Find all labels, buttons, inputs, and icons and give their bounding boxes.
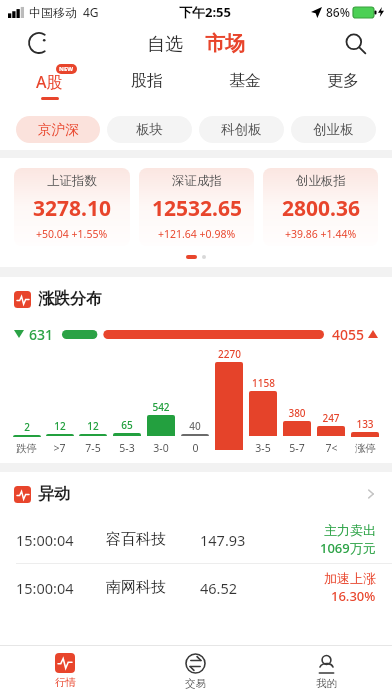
staticText: 15:00:04 [16, 578, 74, 598]
button[interactable]: 上证指数 [14, 168, 130, 246]
staticText: 3278.10 [33, 194, 111, 223]
staticText: 深证成指 [172, 173, 222, 189]
staticText: 市场 [205, 31, 245, 56]
staticText: 542 [152, 400, 170, 414]
button[interactable]: 更多 [294, 62, 392, 108]
staticText: 7< [325, 441, 338, 455]
staticText: 247 [322, 411, 340, 425]
staticText: 跌停 [16, 442, 37, 455]
staticText: 2 [24, 420, 30, 434]
staticText: A股 [36, 71, 63, 93]
staticText: 380 [288, 406, 306, 420]
staticText: 更多 [327, 71, 359, 91]
staticText: 我的 [316, 677, 337, 690]
staticText: 65 [121, 418, 133, 432]
button[interactable]: 深证成指 [139, 168, 254, 246]
staticText: 12 [54, 419, 66, 433]
staticText: 异动 [38, 484, 70, 504]
staticText: 南网科技 [106, 578, 166, 597]
button[interactable]: 股指 [98, 62, 196, 108]
button[interactable]: 市场 [201, 29, 249, 58]
staticText: 中国移动 [29, 5, 77, 20]
staticText: 631 [29, 325, 54, 344]
button[interactable]: Search [338, 26, 372, 60]
staticText: 16.30% [331, 587, 376, 605]
staticText: 4G [83, 4, 99, 20]
button[interactable]: 15:00:04 [0, 564, 392, 611]
staticText: 加速上涨 [324, 570, 376, 586]
staticText: 股指 [131, 71, 163, 91]
staticText: 40 [189, 419, 201, 433]
staticText: 科创板 [221, 121, 262, 138]
button[interactable]: 创业板 [291, 116, 376, 143]
staticText: 上证指数 [47, 173, 97, 189]
staticText: 京沪深 [38, 121, 79, 138]
staticText: +39.86 +1.44% [285, 227, 357, 241]
staticText: 4055 [332, 325, 365, 344]
staticText: +121.64 +0.98% [158, 227, 236, 241]
staticText: +50.04 +1.55% [36, 227, 108, 241]
staticText: 创业板指 [296, 173, 346, 189]
button[interactable]: 创业板指 [263, 168, 378, 246]
staticText: >7 [53, 441, 66, 455]
staticText: 板块 [136, 121, 163, 138]
staticText: 3-5 [255, 441, 271, 455]
staticText: 15:00:04 [16, 530, 74, 550]
staticText: 86% [326, 4, 350, 20]
button[interactable]: 基金 [196, 62, 294, 108]
staticText: 147.93 [200, 530, 246, 550]
staticText: 5-3 [119, 441, 135, 455]
button[interactable]: 京沪深 [16, 116, 100, 143]
staticText: 133 [356, 417, 374, 431]
button[interactable]: 科创板 [199, 116, 284, 143]
staticText: 涨跌分布 [38, 289, 102, 309]
staticText: 涨停 [355, 442, 376, 455]
button[interactable]: 行情 [0, 646, 130, 696]
staticText: NEW [59, 65, 74, 73]
staticText: 创业板 [313, 121, 354, 138]
button[interactable]: 我的 [261, 646, 392, 696]
staticText: 7-5 [85, 441, 101, 455]
staticText: 自选 [147, 33, 183, 56]
button[interactable]: 板块 [107, 116, 192, 143]
button[interactable]: A股 [0, 62, 98, 108]
staticText: 46.52 [200, 578, 238, 598]
button[interactable]: 自选 [143, 31, 187, 58]
staticText: 3-0 [153, 441, 169, 455]
staticText: 下午2:55 [179, 3, 231, 21]
staticText: 基金 [229, 71, 261, 91]
staticText: 容百科技 [106, 530, 166, 549]
staticText: 2800.36 [282, 194, 360, 223]
staticText: 主力卖出 [324, 522, 376, 538]
button[interactable]: Night mode [22, 26, 56, 60]
staticText: 交易 [185, 677, 206, 690]
staticText: 1069万元 [320, 539, 376, 557]
staticText: 1158 [252, 376, 275, 390]
staticText: 5-7 [289, 441, 305, 455]
staticText: 0 [192, 441, 199, 455]
button[interactable]: 交易 [130, 646, 261, 696]
staticText: 2270 [218, 347, 241, 361]
button[interactable]: 15:00:04 [0, 516, 392, 563]
staticText: 12532.65 [152, 194, 242, 223]
staticText: 行情 [55, 676, 76, 689]
staticText: 12 [87, 419, 99, 433]
